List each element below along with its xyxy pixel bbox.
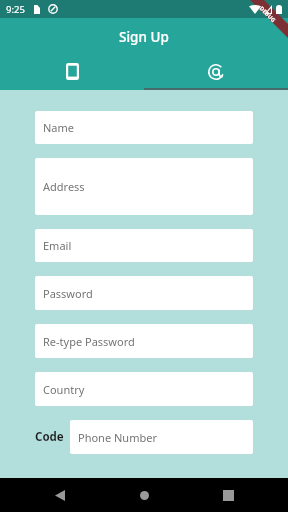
button[interactable]: Country (35, 372, 253, 406)
button[interactable]: Back (43, 478, 77, 512)
staticText: Address (43, 179, 85, 194)
button[interactable]: Password (35, 276, 253, 310)
button[interactable]: Email (144, 53, 288, 90)
staticText: Re-type Password (43, 334, 135, 349)
staticText: Phone Number (78, 430, 157, 445)
staticText: 9:25 (6, 3, 25, 16)
button[interactable]: Phone Number (70, 420, 253, 454)
button[interactable]: Recents (211, 478, 245, 512)
staticText: Email (43, 238, 72, 253)
staticText: Code (35, 429, 64, 445)
button[interactable]: Home (127, 478, 161, 512)
button[interactable]: Phone (0, 53, 144, 90)
staticText: Country (43, 382, 85, 397)
button[interactable]: Name (35, 111, 253, 144)
button[interactable]: Re-type Password (35, 324, 253, 358)
button[interactable]: Email (35, 229, 253, 262)
staticText: Password (43, 286, 93, 301)
staticText: Sign Up (119, 28, 169, 46)
staticText: Name (43, 120, 75, 135)
button[interactable]: Address (35, 158, 253, 215)
